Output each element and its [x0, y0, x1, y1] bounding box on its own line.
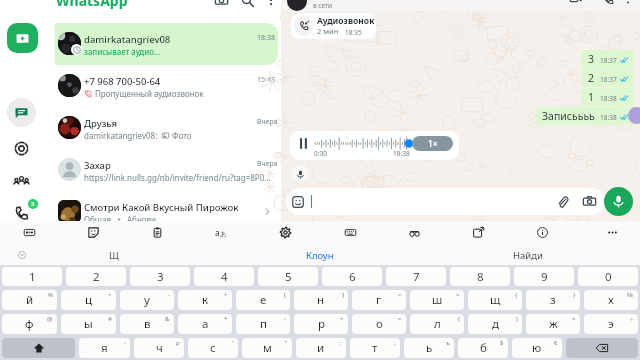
- button[interactable]: Search: [238, 0, 256, 9]
- button[interactable]: я: [79, 338, 130, 358]
- button[interactable]: и: [296, 338, 346, 358]
- button[interactable]: э: [584, 314, 638, 334]
- button[interactable]: 3: [581, 50, 634, 68]
- button[interactable]: Друзья: [55, 107, 278, 149]
- button[interactable]: Chats: [7, 98, 36, 127]
- button[interactable]: Подслушано: [55, 233, 278, 244]
- button[interactable]: More options: [620, 0, 636, 7]
- button[interactable]: Info: [531, 221, 553, 243]
- button[interactable]: New chat: [7, 23, 38, 53]
- staticText: Вчера: [257, 159, 278, 169]
- button[interactable]: Incognito: [403, 221, 425, 243]
- staticText: м: [263, 340, 272, 356]
- button[interactable]: Keyboard mode: [339, 221, 361, 243]
- button[interactable]: 9: [514, 267, 574, 286]
- button[interactable]: а: [178, 314, 232, 334]
- button[interactable]: т: [350, 338, 400, 358]
- staticText: %: [48, 291, 53, 299]
- button[interactable]: Recording: [291, 165, 309, 183]
- button[interactable]: е: [236, 290, 290, 310]
- button[interactable]: ж: [526, 314, 580, 334]
- button[interactable]: Смотри Какой Вкусный Пирожок: [55, 191, 278, 233]
- button[interactable]: у: [120, 290, 174, 310]
- button[interactable]: Calls: [7, 199, 36, 228]
- button[interactable]: 3: [130, 267, 190, 286]
- button[interactable]: 2: [66, 267, 126, 286]
- button[interactable]: ш: [410, 290, 464, 310]
- button[interactable]: 6: [322, 267, 382, 286]
- button[interactable]: Record voice message: [604, 187, 633, 216]
- button[interactable]: л: [410, 314, 464, 334]
- button[interactable]: о: [352, 314, 406, 334]
- button[interactable]: Найди: [483, 245, 573, 265]
- button[interactable]: 4: [194, 267, 254, 286]
- staticText: ю: [532, 340, 542, 356]
- button[interactable]: Camera: [212, 0, 230, 9]
- button[interactable]: +7 968 700-50-64: [55, 65, 278, 107]
- button[interactable]: й: [2, 290, 57, 310]
- button[interactable]: damirkatangriev08: [55, 23, 278, 65]
- button[interactable]: 1×: [290, 131, 459, 160]
- button[interactable]: Status updates: [7, 134, 36, 163]
- button[interactable]: ф: [2, 314, 57, 334]
- staticText: a: [215, 227, 220, 238]
- button[interactable]: в: [120, 314, 174, 334]
- button[interactable]: More: [601, 221, 623, 243]
- button[interactable]: з: [526, 290, 580, 310]
- button[interactable]: Expand toolbar: [12, 245, 32, 265]
- staticText: 18:37: [600, 56, 617, 65]
- button[interactable]: Clipboard: [146, 221, 168, 243]
- button[interactable]: ы: [61, 314, 116, 334]
- staticText: ч: [156, 340, 163, 356]
- button[interactable]: Translate: [210, 221, 232, 243]
- button[interactable]: д: [468, 314, 522, 334]
- button[interactable]: г: [352, 290, 406, 310]
- button[interactable]: 0: [578, 267, 638, 286]
- staticText: д: [492, 316, 499, 332]
- button[interactable]: 7: [386, 267, 446, 286]
- button[interactable]: Backspace: [566, 338, 638, 358]
- button[interactable]: Захар: [55, 149, 278, 191]
- staticText: =: [398, 315, 402, 323]
- button[interactable]: Аудиозвонок: [291, 13, 376, 39]
- button[interactable]: Записьььь: [535, 107, 634, 125]
- button[interactable]: н: [294, 290, 348, 310]
- button[interactable]: ю: [512, 338, 562, 358]
- staticText: 3: [157, 269, 164, 285]
- button[interactable]: 1: [2, 267, 62, 286]
- button[interactable]: 2: [581, 69, 634, 87]
- button[interactable]: Resize: [467, 221, 489, 243]
- button[interactable]: ч: [134, 338, 184, 358]
- button[interactable]: х: [584, 290, 638, 310]
- button[interactable]: Shift: [2, 338, 75, 358]
- button[interactable]: Video call: [568, 0, 584, 7]
- button[interactable]: п: [236, 314, 290, 334]
- button[interactable]: м: [242, 338, 292, 358]
- button[interactable]: 8: [450, 267, 510, 286]
- staticText: Фото: [172, 130, 192, 141]
- staticText: 2: [93, 269, 100, 285]
- button[interactable]: [292, 188, 596, 215]
- button[interactable]: Щ: [69, 245, 159, 265]
- staticText: я: [101, 340, 108, 356]
- button[interactable]: б: [458, 338, 508, 358]
- button[interactable]: More options: [262, 0, 280, 9]
- staticText: ": [285, 339, 288, 347]
- button[interactable]: GIF: [18, 221, 40, 243]
- button[interactable]: Settings: [274, 221, 296, 243]
- button[interactable]: 1: [581, 88, 634, 106]
- button[interactable]: Клоун: [275, 245, 365, 265]
- staticText: +: [224, 291, 228, 299]
- button[interactable]: Communities: [7, 167, 36, 196]
- button[interactable]: ц: [61, 290, 116, 310]
- button[interactable]: к: [178, 290, 232, 310]
- button[interactable]: Voice call: [600, 0, 616, 7]
- button[interactable]: ь: [404, 338, 454, 358]
- button[interactable]: с: [188, 338, 238, 358]
- button[interactable]: 5: [258, 267, 318, 286]
- staticText: Аудиозвонок: [317, 15, 375, 27]
- button[interactable]: Stickers: [82, 221, 104, 243]
- button[interactable]: щ: [468, 290, 522, 310]
- button[interactable]: 1×: [412, 136, 453, 151]
- button[interactable]: р: [294, 314, 348, 334]
